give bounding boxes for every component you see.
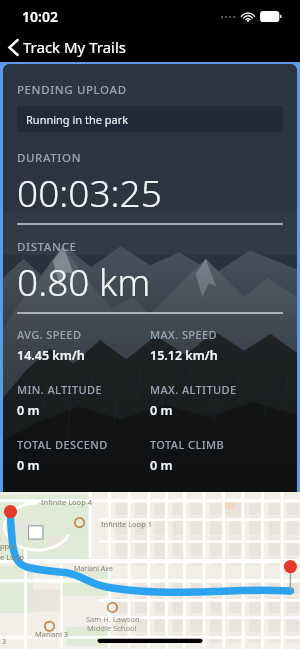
- staticText: 3: [2, 637, 7, 647]
- staticText: Running in the park: [26, 112, 129, 127]
- staticText: 00:03:25: [17, 167, 162, 217]
- staticText: DISTANCE: [17, 239, 77, 255]
- button[interactable]: PENDING UPLOAD: [3, 64, 297, 492]
- button[interactable]: Back: [0, 33, 134, 61]
- staticText: 0 m: [150, 402, 173, 419]
- staticText: Mariani Ave: [74, 564, 113, 574]
- staticText: DURATION: [17, 150, 82, 166]
- button[interactable]: Route map: [0, 492, 300, 649]
- staticText: pple: [0, 541, 16, 551]
- staticText: 10:02: [22, 7, 58, 26]
- staticText: Sam H. Lawson: [86, 614, 140, 624]
- staticText: TOTAL DESCEND: [17, 437, 108, 452]
- staticText: Mariani 3: [35, 629, 69, 639]
- button[interactable]: Running in the park: [17, 106, 283, 132]
- staticText: AVG. SPEED: [17, 327, 82, 342]
- staticText: Track My Trails: [23, 37, 126, 57]
- staticText: 0 m: [17, 402, 40, 419]
- staticText: 0 m: [17, 457, 40, 474]
- staticText: MAX. ALTITUDE: [150, 382, 237, 397]
- staticText: 15.12 km/h: [150, 347, 218, 364]
- staticText: 14.45 km/h: [17, 347, 85, 364]
- staticText: PENDING UPLOAD: [17, 82, 127, 98]
- staticText: 0 m: [150, 457, 173, 474]
- staticText: Middle School: [87, 623, 137, 633]
- staticText: MAX. SPEED: [150, 327, 217, 342]
- staticText: Infinite Loop 4: [41, 497, 93, 507]
- staticText: MIN. ALTITUDE: [17, 382, 102, 397]
- staticText: TOTAL CLIMB: [150, 437, 225, 452]
- staticText: e Loop: [0, 552, 24, 562]
- staticText: Infinite Loop 1: [101, 519, 153, 529]
- staticText: 0.80 km: [17, 256, 151, 306]
